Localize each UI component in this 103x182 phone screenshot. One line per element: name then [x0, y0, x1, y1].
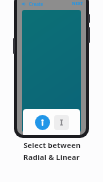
button[interactable]: Back	[20, 0, 28, 8]
button[interactable]: Create	[29, 1, 44, 7]
button[interactable]	[22, 10, 81, 132]
button[interactable]: Radial gradient	[35, 115, 50, 130]
staticText: Radial & Linear	[23, 152, 80, 162]
button[interactable]: Linear gradient	[54, 115, 69, 130]
staticText: Select between	[23, 140, 81, 150]
button[interactable]: NEXT	[72, 1, 83, 7]
